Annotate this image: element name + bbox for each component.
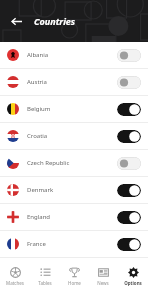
- button[interactable]: On: [117, 103, 141, 116]
- button[interactable]: Matches: [1, 257, 29, 296]
- button[interactable]: France: [0, 231, 148, 257]
- staticText: Czech Republic: [27, 159, 117, 167]
- button[interactable]: Off: [117, 49, 141, 62]
- staticText: Croatia: [27, 132, 117, 140]
- button[interactable]: On: [117, 238, 141, 251]
- staticText: Countries: [34, 15, 76, 27]
- button[interactable]: Austria: [0, 69, 148, 95]
- staticText: Matches: [6, 280, 24, 286]
- staticText: Tables: [38, 280, 52, 286]
- staticText: Albania: [27, 51, 117, 59]
- staticText: Home: [68, 280, 81, 286]
- button[interactable]: Home: [60, 257, 88, 296]
- button[interactable]: On: [117, 211, 141, 224]
- staticText: Denmark: [27, 186, 117, 194]
- staticText: Belgium: [27, 105, 117, 113]
- staticText: England: [27, 213, 117, 221]
- staticText: France: [27, 240, 117, 248]
- button[interactable]: On: [117, 184, 141, 197]
- button[interactable]: Belgium: [0, 96, 148, 122]
- button[interactable]: Off: [117, 157, 141, 170]
- button[interactable]: Off: [117, 76, 141, 89]
- staticText: Options: [124, 280, 142, 286]
- button[interactable]: Croatia: [0, 123, 148, 149]
- button[interactable]: On: [117, 130, 141, 143]
- button[interactable]: England: [0, 204, 148, 230]
- button[interactable]: Czech Republic: [0, 150, 148, 176]
- button[interactable]: Albania: [0, 42, 148, 68]
- button[interactable]: News: [89, 257, 117, 296]
- button[interactable]: Denmark: [0, 177, 148, 203]
- button[interactable]: Tables: [31, 257, 59, 296]
- button[interactable]: Back: [6, 11, 26, 31]
- staticText: News: [97, 280, 109, 286]
- staticText: Austria: [27, 78, 117, 86]
- button[interactable]: Options: [119, 257, 147, 296]
